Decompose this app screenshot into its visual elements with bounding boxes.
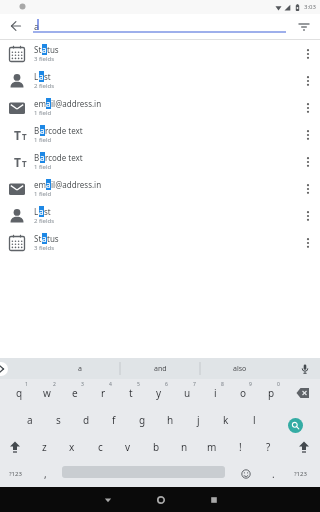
button[interactable]: y bbox=[145, 379, 173, 406]
button[interactable]: h bbox=[156, 406, 184, 433]
staticText: T bbox=[14, 154, 21, 170]
button[interactable]: St bbox=[0, 229, 320, 256]
button[interactable] bbox=[296, 231, 320, 255]
staticText: 1 bbox=[25, 381, 28, 388]
button[interactable]: . bbox=[259, 460, 287, 487]
button[interactable] bbox=[296, 177, 320, 201]
staticText: h bbox=[167, 413, 174, 427]
staticText: also bbox=[233, 364, 247, 374]
staticText: T bbox=[14, 127, 21, 143]
staticText: B bbox=[34, 125, 40, 136]
button[interactable] bbox=[0, 362, 8, 376]
button[interactable] bbox=[201, 487, 226, 512]
staticText: . bbox=[272, 467, 275, 481]
button[interactable]: t bbox=[117, 379, 145, 406]
button[interactable]: a bbox=[33, 17, 287, 36]
button[interactable]: q bbox=[5, 379, 33, 406]
button[interactable]: T bbox=[0, 148, 320, 175]
button[interactable]: b bbox=[142, 433, 170, 460]
button[interactable]: z bbox=[30, 433, 58, 460]
staticText: a bbox=[46, 179, 51, 190]
button[interactable]: a bbox=[40, 358, 120, 379]
staticText: em bbox=[34, 98, 46, 109]
staticText: 0 bbox=[277, 381, 280, 388]
button[interactable]: l bbox=[240, 406, 268, 433]
button[interactable]: L bbox=[0, 202, 320, 229]
staticText: 1 field bbox=[34, 109, 52, 117]
button[interactable] bbox=[148, 487, 173, 512]
button[interactable] bbox=[95, 487, 120, 512]
button[interactable]: em bbox=[0, 94, 320, 121]
staticText: a bbox=[46, 98, 51, 109]
button[interactable]: , bbox=[31, 460, 59, 487]
button[interactable] bbox=[296, 204, 320, 228]
staticText: u bbox=[184, 386, 191, 400]
button[interactable] bbox=[298, 362, 312, 376]
button[interactable] bbox=[294, 17, 314, 37]
staticText: il@address.in bbox=[51, 98, 102, 109]
button[interactable]: ! bbox=[226, 433, 254, 460]
staticText: 3:03 bbox=[304, 3, 316, 11]
button[interactable]: also bbox=[200, 358, 280, 379]
staticText: e bbox=[72, 386, 78, 400]
button[interactable]: c bbox=[86, 433, 114, 460]
staticText: o bbox=[240, 386, 247, 400]
button[interactable] bbox=[4, 14, 28, 38]
staticText: a bbox=[42, 233, 47, 244]
button[interactable]: n bbox=[170, 433, 198, 460]
button[interactable] bbox=[289, 379, 317, 406]
button[interactable] bbox=[288, 418, 303, 433]
button[interactable] bbox=[296, 96, 320, 120]
staticText: L bbox=[34, 71, 39, 82]
button[interactable]: and bbox=[120, 358, 200, 379]
button[interactable]: w bbox=[33, 379, 61, 406]
staticText: d bbox=[83, 413, 90, 427]
button[interactable]: u bbox=[173, 379, 201, 406]
button[interactable]: ?123 bbox=[286, 460, 314, 487]
staticText: x bbox=[69, 440, 75, 454]
button[interactable]: i bbox=[201, 379, 229, 406]
button[interactable]: v bbox=[114, 433, 142, 460]
button[interactable]: x bbox=[58, 433, 86, 460]
staticText: w bbox=[43, 386, 51, 400]
button[interactable]: L bbox=[0, 67, 320, 94]
staticText: i bbox=[214, 386, 217, 400]
staticText: b bbox=[153, 440, 160, 454]
button[interactable]: k bbox=[212, 406, 240, 433]
button[interactable]: a bbox=[16, 406, 44, 433]
button[interactable]: r bbox=[89, 379, 117, 406]
staticText: a bbox=[40, 125, 45, 136]
staticText: B bbox=[34, 152, 40, 163]
button[interactable] bbox=[290, 433, 318, 460]
button[interactable] bbox=[236, 460, 256, 487]
staticText: a bbox=[42, 44, 47, 55]
button[interactable] bbox=[296, 123, 320, 147]
button[interactable] bbox=[296, 69, 320, 93]
button[interactable]: s bbox=[44, 406, 72, 433]
button[interactable]: j bbox=[184, 406, 212, 433]
staticText: p bbox=[268, 386, 275, 400]
button[interactable]: St bbox=[0, 40, 320, 67]
button[interactable]: ?123 bbox=[1, 460, 29, 487]
staticText: g bbox=[139, 413, 146, 427]
button[interactable]: d bbox=[72, 406, 100, 433]
button[interactable] bbox=[296, 150, 320, 174]
button[interactable]: f bbox=[100, 406, 128, 433]
button[interactable]: p bbox=[257, 379, 285, 406]
staticText: tus bbox=[47, 44, 59, 55]
staticText: L bbox=[34, 206, 39, 217]
staticText: a bbox=[39, 71, 44, 82]
staticText: a bbox=[34, 20, 40, 32]
button[interactable]: em bbox=[0, 175, 320, 202]
staticText: a bbox=[78, 364, 82, 374]
button[interactable]: ? bbox=[254, 433, 282, 460]
button[interactable]: T bbox=[0, 121, 320, 148]
staticText: 3 bbox=[81, 381, 84, 388]
button[interactable]: e bbox=[61, 379, 89, 406]
button[interactable]: g bbox=[128, 406, 156, 433]
button[interactable] bbox=[296, 42, 320, 66]
button[interactable]: o bbox=[229, 379, 257, 406]
button[interactable]: m bbox=[198, 433, 226, 460]
button[interactable] bbox=[1, 433, 29, 460]
